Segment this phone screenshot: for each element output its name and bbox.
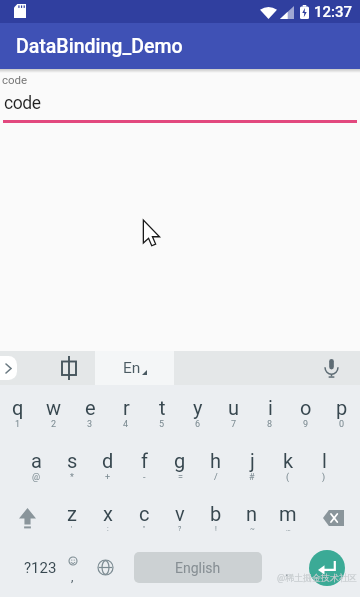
staticText: m [279,502,297,525]
staticText: @ [32,472,41,483]
staticText: 5 [159,419,165,430]
button[interactable]: x [90,491,126,544]
staticText: c [139,502,150,525]
staticText: code [4,93,41,114]
button[interactable]: a [18,438,54,491]
staticText: " [143,525,146,533]
staticText: = [178,472,183,483]
staticText: a [31,449,42,472]
button[interactable] [314,491,352,544]
staticText: DataBinding_Demo [16,35,183,58]
button[interactable] [88,544,122,597]
staticText: j [250,449,255,472]
button[interactable]: d [90,438,126,491]
button[interactable]: h [198,438,234,491]
button[interactable]: p [324,385,360,438]
staticText: n [246,502,258,525]
button[interactable]: v [162,491,198,544]
staticText: 12:37 [314,3,353,21]
button[interactable]: , [58,544,86,597]
button[interactable]: n [234,491,270,544]
button[interactable]: s [54,438,90,491]
staticText: ( [286,472,290,483]
button[interactable]: k [270,438,306,491]
staticText: 1 [15,419,21,430]
button[interactable]: g [162,438,198,491]
button[interactable]: i [252,385,288,438]
staticText: 6 [195,419,201,430]
staticText: : [107,525,109,533]
staticText: x [103,502,113,525]
staticText: i [268,396,273,419]
button[interactable]: w [36,385,72,438]
staticText: code [2,73,28,86]
button[interactable]: c [126,491,162,544]
staticText: 9 [303,419,309,430]
staticText: u [228,396,240,419]
staticText: l [322,449,327,472]
button[interactable]: l [306,438,342,491]
staticText: 4 [123,419,129,430]
button[interactable] [0,356,17,380]
staticText: , [71,570,74,584]
button[interactable]: u [216,385,252,438]
button[interactable] [9,491,45,544]
staticText: 0 [339,419,345,430]
staticText: q [12,396,24,419]
staticText: y [193,396,203,419]
staticText: b [210,502,222,525]
button[interactable]: . [272,544,302,597]
staticText: ? [178,525,182,533]
staticText: 8 [267,419,273,430]
button[interactable]: o [288,385,324,438]
button[interactable] [309,550,345,586]
staticText: z [67,502,77,525]
button[interactable]: q [0,385,36,438]
button[interactable]: English [134,552,262,583]
staticText: ~ [250,525,255,533]
button[interactable]: En [95,351,174,385]
staticText: r [123,396,130,419]
staticText: 3 [87,419,93,430]
staticText: ?123 [24,559,57,577]
staticText: ) [322,472,326,483]
staticText: / [214,472,218,483]
staticText: e [85,396,96,419]
staticText: 2 [51,419,57,430]
staticText: s [67,449,78,472]
staticText: @稀土掘金技术社区 [277,572,358,583]
button[interactable] [320,357,342,379]
button[interactable]: r [108,385,144,438]
staticText: v [175,502,185,525]
staticText: p [336,396,348,419]
staticText: ' [71,525,73,533]
staticText: En [123,359,141,377]
staticText: w [46,396,62,419]
staticText: . [285,562,289,580]
staticText: g [174,449,186,472]
button[interactable]: m [270,491,306,544]
button[interactable]: t [144,385,180,438]
button[interactable] [49,351,89,385]
staticText: English [175,560,221,576]
staticText: f [141,449,148,472]
staticText: t [159,396,166,419]
staticText: + [105,472,111,483]
staticText: d [102,449,114,472]
staticText: k [283,449,294,472]
button[interactable]: ?123 [18,544,62,597]
button[interactable]: y [180,385,216,438]
button[interactable]: j [234,438,270,491]
button[interactable]: e [72,385,108,438]
staticText: … [286,525,291,533]
staticText: * [70,472,74,483]
staticText: 7 [231,419,237,430]
button[interactable]: z [54,491,90,544]
staticText: ! [215,525,217,533]
staticText: # [249,472,255,483]
staticText: h [210,449,222,472]
staticText: - [143,472,146,483]
staticText: o [300,396,312,419]
button[interactable]: b [198,491,234,544]
button[interactable]: f [126,438,162,491]
